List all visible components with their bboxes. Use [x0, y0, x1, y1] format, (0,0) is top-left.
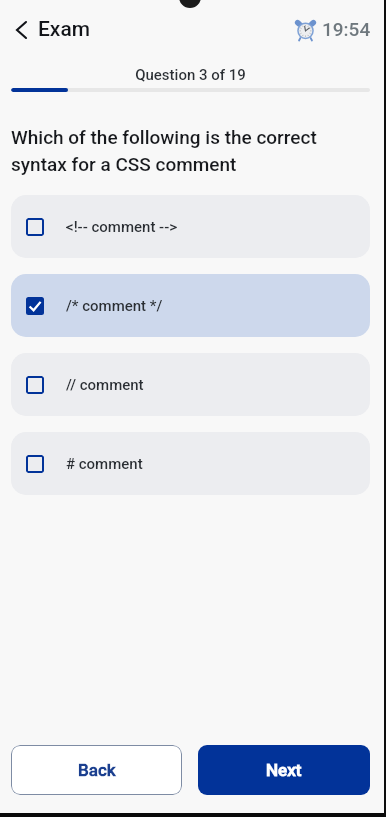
staticText: // comment — [66, 376, 144, 394]
staticText: Exam — [38, 17, 91, 42]
staticText: Back — [78, 760, 116, 780]
button[interactable]: /* comment */ — [11, 274, 370, 337]
button[interactable]: Next — [198, 745, 370, 795]
other: Remaining time — [295, 19, 316, 40]
button[interactable]: <!-- comment --> — [11, 195, 370, 258]
button[interactable]: Exam — [0, 9, 107, 50]
staticText: Which of the following is the correct sy… — [11, 126, 317, 176]
button[interactable]: # comment — [11, 432, 370, 495]
button[interactable]: Back — [11, 745, 182, 795]
staticText: 19:54 — [322, 18, 371, 40]
button[interactable]: // comment — [11, 353, 370, 416]
staticText: # comment — [66, 455, 143, 473]
staticText: Next — [266, 760, 302, 780]
staticText: /* comment */ — [66, 297, 163, 315]
staticText: Question 3 of 19 — [11, 66, 370, 84]
staticText: <!-- comment --> — [66, 218, 178, 236]
